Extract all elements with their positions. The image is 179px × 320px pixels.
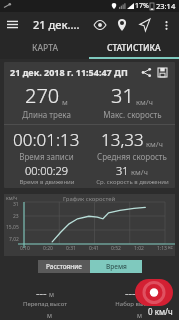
staticText: 1:02 xyxy=(134,245,144,252)
staticText: 0:20 xyxy=(43,245,53,252)
staticText: 15,05 xyxy=(6,224,19,231)
staticText: 21 дек.... xyxy=(33,17,80,32)
staticText: Ср. скорость в движении xyxy=(96,178,169,186)
button[interactable]: КАРТА xyxy=(0,37,89,59)
staticText: --- xyxy=(125,285,136,300)
staticText: Время записи xyxy=(19,151,74,162)
staticText: м xyxy=(62,97,68,107)
staticText: 1:13 xyxy=(157,245,167,252)
staticText: 31 xyxy=(111,82,134,109)
button[interactable]: More options xyxy=(155,14,177,36)
staticText: СТАТИСТИКА xyxy=(107,42,161,54)
button[interactable]: Location xyxy=(111,14,133,36)
staticText: м xyxy=(49,290,54,299)
staticText: м xyxy=(137,311,142,319)
staticText: м xyxy=(47,311,52,319)
button[interactable]: Share xyxy=(139,65,153,79)
button[interactable]: Время xyxy=(90,260,142,273)
staticText: кс xyxy=(168,244,174,251)
staticText: 23:14 xyxy=(156,1,176,11)
button[interactable]: Record track xyxy=(135,279,173,306)
staticText: 0:31 xyxy=(66,245,76,252)
staticText: 270 xyxy=(25,82,60,109)
staticText: 31 xyxy=(13,201,19,208)
staticText: км/ч xyxy=(136,97,153,107)
staticText: Длина трека xyxy=(22,109,71,120)
staticText: 0:52 xyxy=(111,245,121,252)
staticText: Средняя скорость xyxy=(97,151,167,162)
staticText: Время в движении xyxy=(19,178,75,186)
staticText: км/ч xyxy=(146,139,163,149)
button[interactable]: Navigate xyxy=(133,14,155,36)
staticText: 0:10 xyxy=(20,245,30,252)
staticText: Перепад высот xyxy=(23,300,67,308)
button[interactable]: Visibility xyxy=(89,14,111,36)
staticText: 0:41 xyxy=(89,245,99,252)
staticText: 7,02 xyxy=(9,236,19,243)
staticText: 00:01:13 xyxy=(13,128,80,151)
staticText: 31 xyxy=(116,163,129,178)
staticText: 17% xyxy=(135,1,149,11)
staticText: Время xyxy=(106,262,127,271)
staticText: Набор высот xyxy=(115,300,153,308)
button[interactable]: СТАТИСТИКА xyxy=(89,37,179,59)
button[interactable]: Расстояние xyxy=(38,260,90,273)
staticText: м xyxy=(138,290,143,299)
staticText: График скоростей xyxy=(63,195,116,203)
staticText: 13,33 xyxy=(101,128,144,151)
button[interactable]: Save xyxy=(155,65,169,79)
staticText: 21 дек. 2018 г. 11:54:47 ДП xyxy=(10,66,128,78)
staticText: --- xyxy=(36,285,47,300)
staticText: 23 xyxy=(13,213,19,220)
staticText: Расстояние xyxy=(46,262,82,271)
staticText: КАРТА xyxy=(32,42,58,54)
staticText: км/ч xyxy=(6,195,18,202)
staticText: км/ч xyxy=(131,167,148,177)
staticText: 0 км/ч xyxy=(148,306,173,317)
staticText: 00:00:29 xyxy=(25,163,69,178)
staticText: Макс. скорость xyxy=(103,109,162,120)
button[interactable]: Menu xyxy=(0,12,25,37)
